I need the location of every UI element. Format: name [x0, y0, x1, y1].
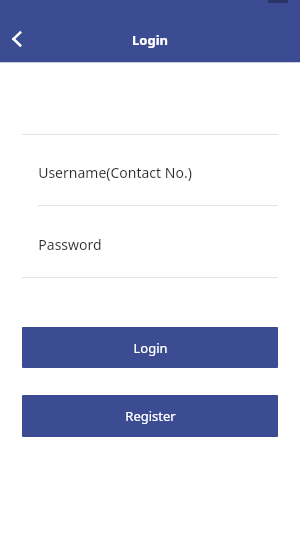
staticText: Password: [38, 235, 102, 254]
button[interactable]: Username(Contact No.): [0, 140, 300, 205]
button[interactable]: Register: [22, 395, 278, 437]
button[interactable]: Login: [22, 327, 278, 368]
staticText: Login: [132, 31, 168, 49]
staticText: Register: [125, 407, 176, 425]
button[interactable]: Back: [2, 24, 32, 54]
staticText: Login: [133, 339, 168, 357]
staticText: Username(Contact No.): [38, 163, 192, 182]
button[interactable]: Password: [0, 212, 300, 277]
